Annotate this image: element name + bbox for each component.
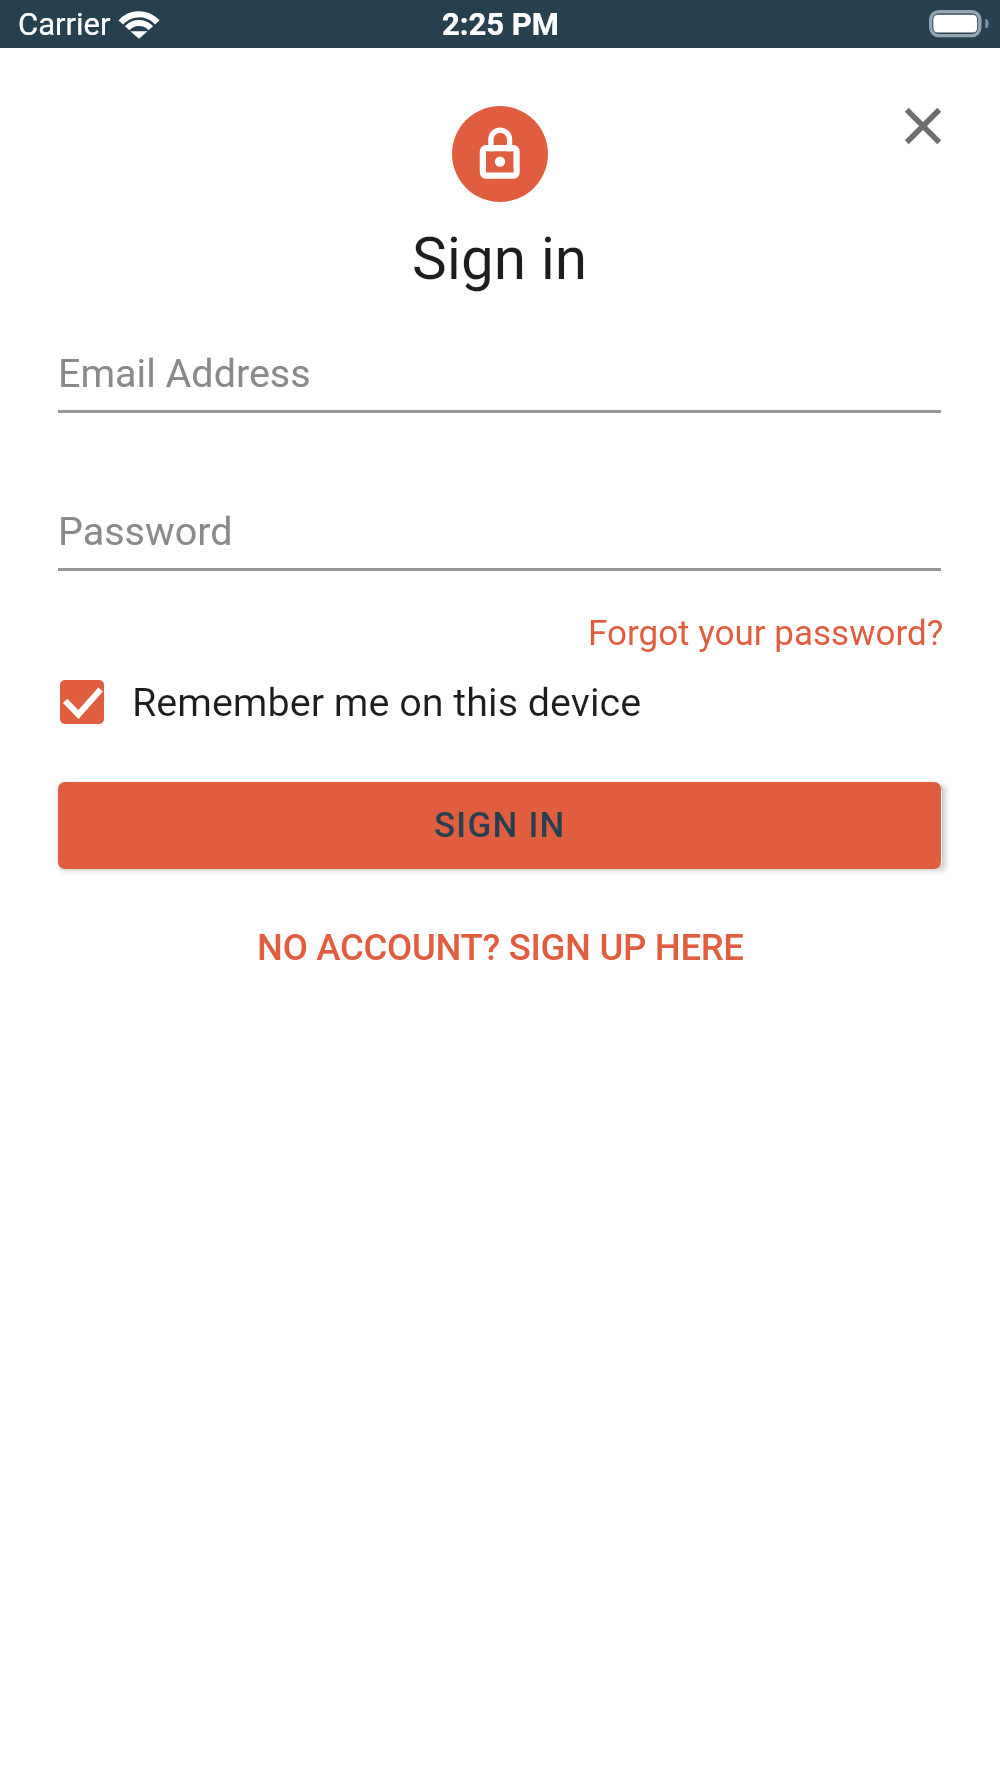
staticText: Sign in (412, 225, 588, 294)
button[interactable]: Email Address (58, 338, 941, 422)
button[interactable]: Remember me on this device (58, 675, 718, 729)
staticText: 2:25 PM (442, 6, 559, 42)
staticText: Carrier (18, 6, 111, 42)
button[interactable]: SIGN IN (58, 782, 941, 869)
staticText: SIGN IN (434, 805, 566, 846)
button[interactable]: Close (879, 82, 966, 169)
button[interactable]: NO ACCOUNT? SIGN UP HERE (257, 926, 744, 969)
button[interactable]: Forgot your password? (61, 613, 944, 654)
staticText: Email Address (58, 350, 311, 396)
staticText: Password (58, 508, 233, 554)
staticText: Forgot your password? (588, 613, 944, 654)
staticText: NO ACCOUNT? SIGN UP HERE (257, 926, 744, 969)
button[interactable]: Password (58, 496, 941, 580)
staticText: Remember me on this device (132, 679, 642, 725)
